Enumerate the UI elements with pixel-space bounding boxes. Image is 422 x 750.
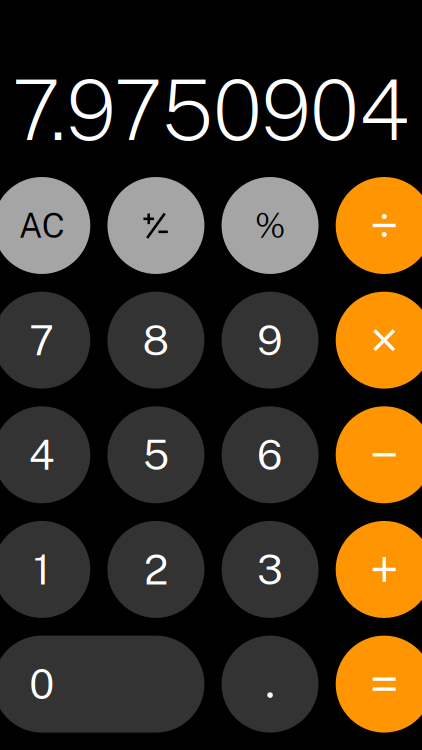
staticText: 9 [257, 316, 283, 364]
button[interactable]: Subtract [336, 406, 422, 503]
button[interactable]: Decimal point [222, 636, 319, 733]
staticText: 3 [257, 545, 283, 594]
button[interactable]: Add [336, 521, 422, 618]
button[interactable]: 4 [0, 406, 90, 503]
button[interactable]: 3 [222, 521, 319, 618]
staticText: 8 [142, 316, 169, 364]
button[interactable]: 8 [107, 292, 204, 389]
staticText: % [255, 206, 285, 245]
staticText: 7.9750904 [12, 61, 410, 159]
staticText: 1 [33, 545, 50, 594]
staticText: 6 [257, 430, 283, 479]
button[interactable]: 6 [222, 406, 319, 503]
button[interactable]: 1 [0, 521, 90, 618]
button[interactable]: 5 [107, 406, 204, 503]
staticText: 2 [144, 545, 168, 594]
staticText: 4 [29, 430, 55, 479]
staticText: 5 [143, 430, 169, 479]
button[interactable]: 7 [0, 292, 90, 389]
button[interactable]: 2 [107, 521, 204, 618]
button[interactable]: Divide [336, 177, 422, 274]
button[interactable]: 0 [0, 636, 204, 733]
button[interactable]: % [222, 177, 319, 274]
staticText: 0 [29, 660, 54, 708]
button[interactable]: Toggle sign [107, 177, 204, 274]
button[interactable]: Equals [336, 636, 422, 733]
staticText: 7 [29, 316, 54, 364]
button[interactable]: Multiply [336, 292, 422, 389]
staticText: AC [19, 206, 65, 245]
button[interactable]: 9 [222, 292, 319, 389]
button[interactable]: AC [0, 177, 90, 274]
